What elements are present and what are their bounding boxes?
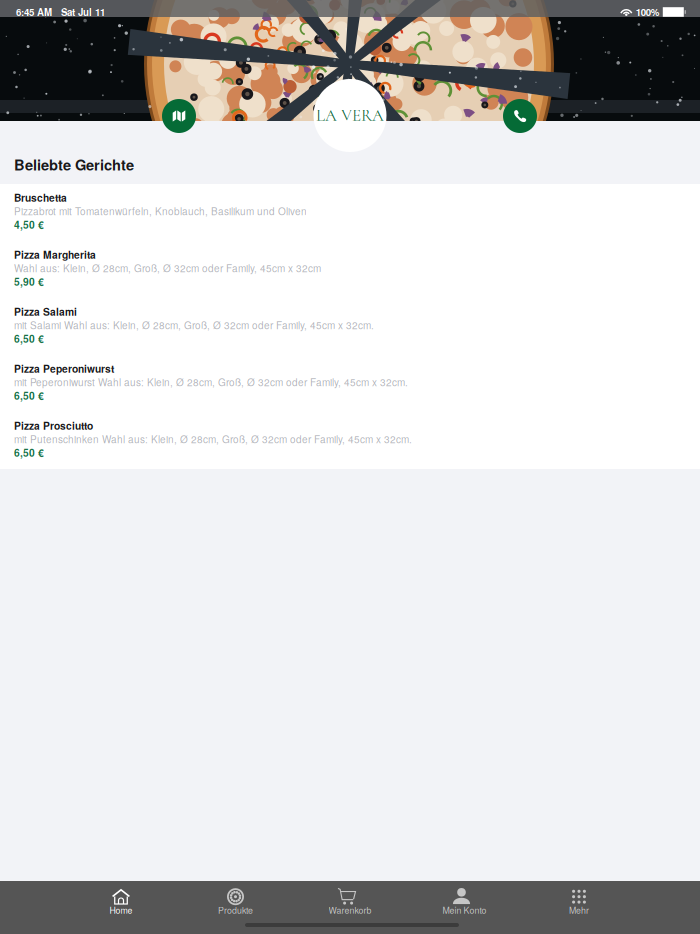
button[interactable]: Pizza Margherita — [0, 241, 700, 298]
staticText: Home — [109, 904, 132, 916]
button[interactable]: Anrufen — [503, 99, 537, 133]
button[interactable]: Pizza Salami — [0, 298, 700, 355]
staticText: Pizza Prosciutto — [14, 418, 93, 433]
staticText: Wahl aus: Klein, Ø 28cm, Groß, Ø 32cm od… — [14, 261, 321, 275]
staticText: Produkte — [218, 904, 253, 916]
staticText: 6:45 AM — [16, 5, 52, 19]
staticText: mit Peperoniwurst Wahl aus: Klein, Ø 28c… — [14, 375, 408, 389]
staticText: Beliebte Gerichte — [14, 154, 134, 175]
staticText: Pizza Salami — [14, 304, 77, 319]
staticText — [660, 5, 663, 19]
button[interactable]: Home — [64, 883, 178, 921]
button[interactable]: Pizza Peperoniwurst — [0, 355, 700, 412]
staticText: Mehr — [569, 904, 589, 916]
staticText: 5,90 € — [14, 274, 44, 289]
staticText: LA VERA — [316, 105, 384, 126]
staticText: Bruschetta — [14, 190, 67, 205]
button[interactable]: Bruschetta — [0, 184, 700, 241]
button[interactable]: Pizza Prosciutto — [0, 412, 700, 469]
staticText: 6,50 € — [14, 331, 44, 346]
staticText — [52, 5, 61, 19]
button[interactable]: Mehr — [522, 883, 636, 921]
staticText: mit Salami Wahl aus: Klein, Ø 28cm, Groß… — [14, 318, 374, 332]
staticText — [633, 5, 636, 19]
staticText: 4,50 € — [14, 217, 44, 232]
button[interactable]: Mein Konto — [407, 883, 522, 921]
staticText: 6,50 € — [14, 388, 44, 403]
staticText: Pizzabrot mit Tomatenwürfeln, Knoblauch,… — [14, 204, 307, 218]
button[interactable]: Karte — [162, 99, 196, 133]
staticText: Warenkorb — [328, 904, 371, 916]
staticText: mit Putenschinken Wahl aus: Klein, Ø 28c… — [14, 432, 412, 446]
button[interactable]: Warenkorb — [293, 883, 407, 921]
staticText: Pizza Peperoniwurst — [14, 361, 114, 376]
staticText: Sat Jul 11 — [61, 5, 105, 19]
button[interactable]: Produkte — [178, 883, 293, 921]
staticText: Pizza Margherita — [14, 247, 96, 262]
staticText: 100% — [636, 5, 660, 19]
staticText: Mein Konto — [442, 904, 486, 916]
staticText: 6,50 € — [14, 445, 44, 460]
